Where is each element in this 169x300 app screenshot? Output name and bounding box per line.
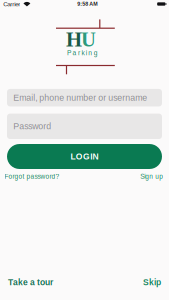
staticText: Take a tour [8, 277, 53, 287]
button[interactable]: Forgot password? [4, 173, 59, 180]
button[interactable]: LOGIN [7, 144, 162, 169]
staticText: r [78, 49, 80, 57]
staticText: g [94, 49, 98, 57]
staticText: LOGIN [70, 152, 99, 161]
button[interactable]: Email, phone number or username [7, 89, 162, 106]
staticText: Password [13, 121, 51, 131]
staticText: Sign up [140, 173, 163, 180]
staticText: P [67, 49, 71, 57]
staticText: a [72, 49, 76, 57]
staticText: 9:58 AM [77, 1, 97, 7]
button[interactable]: Sign up [140, 173, 163, 180]
button[interactable]: Take a tour [8, 277, 53, 287]
staticText: Email, phone number or username [13, 93, 147, 103]
button[interactable]: Password [7, 114, 162, 139]
button[interactable]: Skip [143, 277, 161, 287]
staticText: k [81, 49, 84, 57]
staticText: Carrier [3, 1, 20, 7]
staticText: Skip [143, 277, 161, 287]
staticText: Forgot password? [4, 173, 59, 180]
staticText: U [81, 28, 96, 51]
staticText: H [66, 28, 82, 51]
staticText: n [88, 49, 92, 57]
staticText: i [86, 49, 87, 57]
